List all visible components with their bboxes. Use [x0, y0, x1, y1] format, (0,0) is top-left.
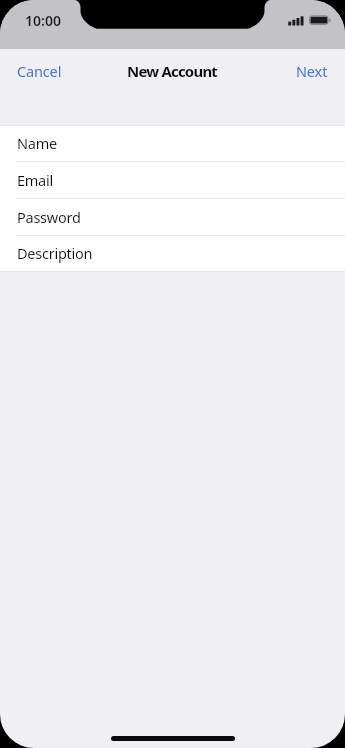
- button[interactable]: Next: [285, 53, 339, 89]
- staticText: Password: [17, 207, 81, 227]
- button[interactable]: Description: [0, 236, 345, 272]
- staticText: Email: [17, 170, 53, 190]
- button[interactable]: Password: [0, 199, 345, 236]
- staticText: 10:00: [25, 11, 61, 30]
- staticText: Description: [17, 243, 93, 263]
- button[interactable]: Email: [0, 162, 345, 199]
- staticText: Name: [17, 133, 57, 153]
- other: Cellular signal and battery status: [287, 14, 331, 26]
- staticText: New Account: [127, 61, 218, 81]
- staticText: Cancel: [17, 61, 62, 81]
- button[interactable]: Name: [0, 125, 345, 162]
- staticText: Next: [296, 61, 328, 81]
- button[interactable]: Cancel: [6, 53, 73, 89]
